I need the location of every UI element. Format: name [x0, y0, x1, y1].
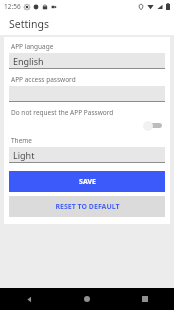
staticText: Theme: [11, 136, 33, 145]
staticText: SAVE: [79, 177, 96, 187]
button[interactable]: Back: [0, 288, 58, 310]
button[interactable]: Home: [58, 288, 116, 310]
button[interactable]: Light: [9, 147, 165, 163]
other: Do not request the APP Password toggle: [143, 120, 162, 131]
staticText: Light: [13, 149, 35, 161]
button[interactable]: [9, 86, 165, 102]
button[interactable]: Recent apps: [116, 288, 174, 310]
button[interactable]: English: [9, 53, 165, 69]
staticText: 12:56: [4, 2, 21, 11]
button[interactable]: Do not request the APP Password: [9, 108, 165, 131]
button[interactable]: RESET TO DEFAULT: [9, 196, 165, 217]
button[interactable]: SAVE: [9, 171, 165, 192]
staticText: APP language: [11, 42, 54, 51]
staticText: RESET TO DEFAULT: [55, 202, 120, 212]
staticText: Settings: [9, 17, 49, 31]
staticText: English: [13, 55, 44, 67]
staticText: Do not request the APP Password: [11, 108, 114, 117]
staticText: APP access password: [11, 75, 76, 84]
